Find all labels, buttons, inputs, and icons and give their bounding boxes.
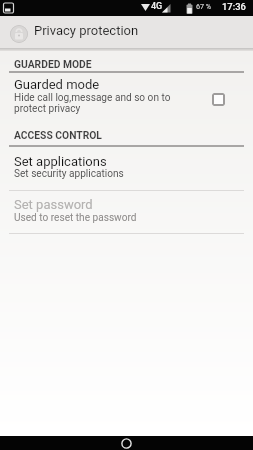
staticText: Set applications <box>14 154 107 169</box>
button[interactable]: Set password <box>0 191 253 233</box>
staticText: Privacy protection <box>34 23 139 38</box>
button[interactable] <box>121 438 132 449</box>
staticText: Used to reset the password <box>14 212 137 224</box>
staticText: Guarded mode <box>14 77 100 92</box>
staticText: 4G <box>151 1 163 12</box>
staticText: Set security applications <box>14 168 124 180</box>
staticText: Hide call log,message and so on to prote… <box>14 92 171 115</box>
staticText: 67 % <box>196 2 212 10</box>
staticText: 17:36 <box>222 1 246 12</box>
button[interactable]: Set applications <box>0 146 253 189</box>
button[interactable]: Guarded mode <box>0 73 253 118</box>
staticText: GUARDED MODE <box>14 58 92 70</box>
staticText: Set password <box>14 197 93 212</box>
staticText: ACCESS CONTROL <box>14 129 102 141</box>
